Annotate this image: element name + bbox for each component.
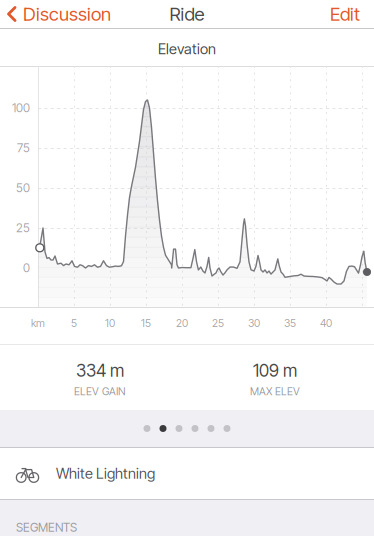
button[interactable]: Discussion xyxy=(0,0,111,28)
staticText: 25 xyxy=(212,316,224,329)
button[interactable]: White Lightning xyxy=(0,448,374,499)
staticText: ELEV GAIN xyxy=(74,385,126,398)
staticText: 5 xyxy=(71,316,77,329)
staticText: 30 xyxy=(248,316,260,329)
staticText: 20 xyxy=(176,316,188,329)
staticText: 0 xyxy=(23,261,30,275)
staticText: MAX ELEV xyxy=(250,385,300,398)
staticText: SEGMENTS xyxy=(16,520,77,534)
button[interactable]: Edit xyxy=(290,0,374,28)
staticText: 50 xyxy=(16,181,30,195)
staticText: km xyxy=(31,316,45,329)
staticText: 40 xyxy=(320,316,332,329)
staticText: 10 xyxy=(105,316,115,329)
staticText: 75 xyxy=(17,141,30,155)
staticText: Edit xyxy=(330,3,360,25)
staticText: 25 xyxy=(16,221,30,235)
staticText: 334 m xyxy=(76,360,124,381)
staticText: Elevation xyxy=(158,40,216,58)
staticText: 100 xyxy=(12,101,30,115)
staticText: 109 m xyxy=(253,360,297,381)
staticText: White Lightning xyxy=(56,465,155,482)
staticText: Discussion xyxy=(23,3,111,25)
staticText: 15 xyxy=(141,316,151,329)
staticText: Ride xyxy=(169,3,204,25)
staticText: 35 xyxy=(284,316,296,329)
